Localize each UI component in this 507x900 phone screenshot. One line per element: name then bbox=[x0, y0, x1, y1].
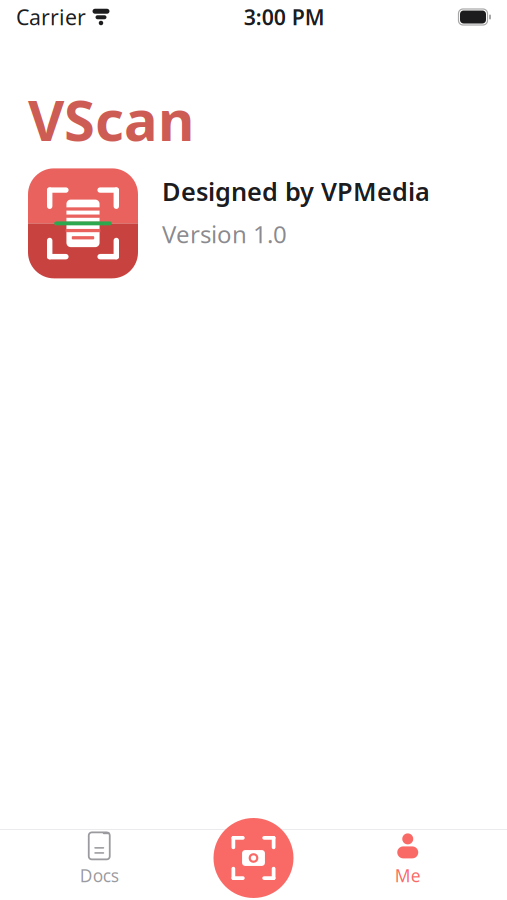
staticText: 3:00 PM bbox=[244, 3, 325, 31]
button[interactable]: Scan document bbox=[213, 818, 293, 898]
staticText: VScan bbox=[28, 82, 194, 156]
staticText: Version 1.0 bbox=[162, 218, 287, 250]
button[interactable]: Docs bbox=[0, 824, 198, 895]
staticText: Me bbox=[395, 864, 421, 887]
staticText: Docs bbox=[80, 864, 119, 887]
staticText: Designed by VPMedia bbox=[162, 174, 430, 208]
staticText: Carrier bbox=[16, 3, 86, 31]
button[interactable]: Me bbox=[308, 824, 507, 895]
